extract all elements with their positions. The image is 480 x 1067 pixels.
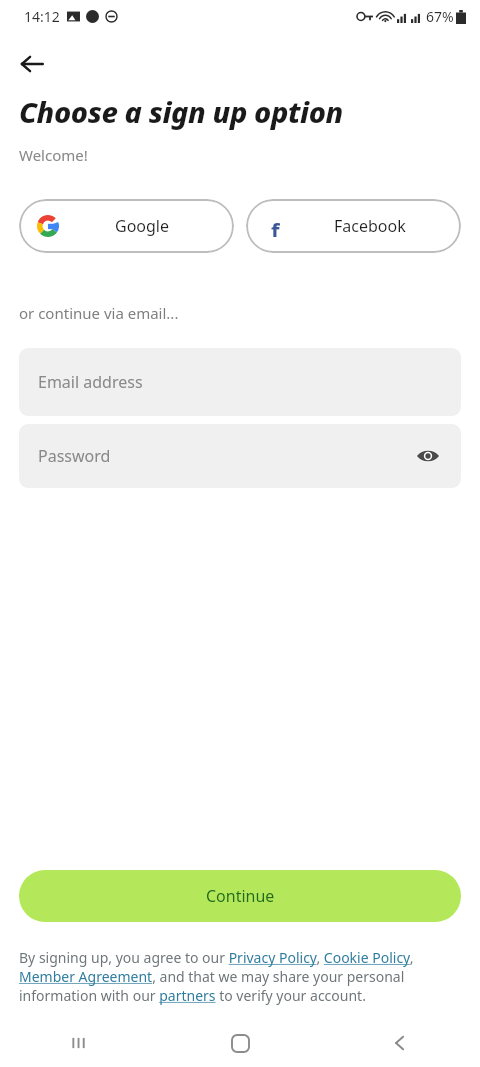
- staticText: f: [271, 215, 280, 237]
- staticText: Google: [115, 215, 170, 237]
- button[interactable]: Email address: [19, 348, 461, 416]
- button[interactable]: Show password: [413, 441, 443, 471]
- button[interactable]: Google: [19, 199, 234, 253]
- staticText: 67%: [426, 7, 454, 26]
- staticText: Facebook: [334, 215, 406, 237]
- staticText: By signing up, you agree to our Privacy …: [19, 948, 461, 1005]
- button[interactable]: Password: [19, 424, 461, 488]
- button[interactable]: Recents: [0, 1019, 160, 1067]
- staticText: Email address: [38, 371, 143, 393]
- staticText: or continue via email...: [19, 303, 179, 323]
- button[interactable]: Home: [160, 1019, 320, 1067]
- button[interactable]: f: [246, 199, 461, 253]
- staticText: Password: [38, 445, 111, 467]
- staticText: Continue: [206, 885, 275, 907]
- button[interactable]: Continue: [19, 870, 461, 922]
- button[interactable]: Back: [320, 1019, 480, 1067]
- staticText: Welcome!: [19, 145, 88, 165]
- staticText: 14:12: [24, 7, 60, 26]
- button[interactable]: Back: [10, 42, 54, 86]
- staticText: Choose a sign up option: [19, 92, 343, 131]
